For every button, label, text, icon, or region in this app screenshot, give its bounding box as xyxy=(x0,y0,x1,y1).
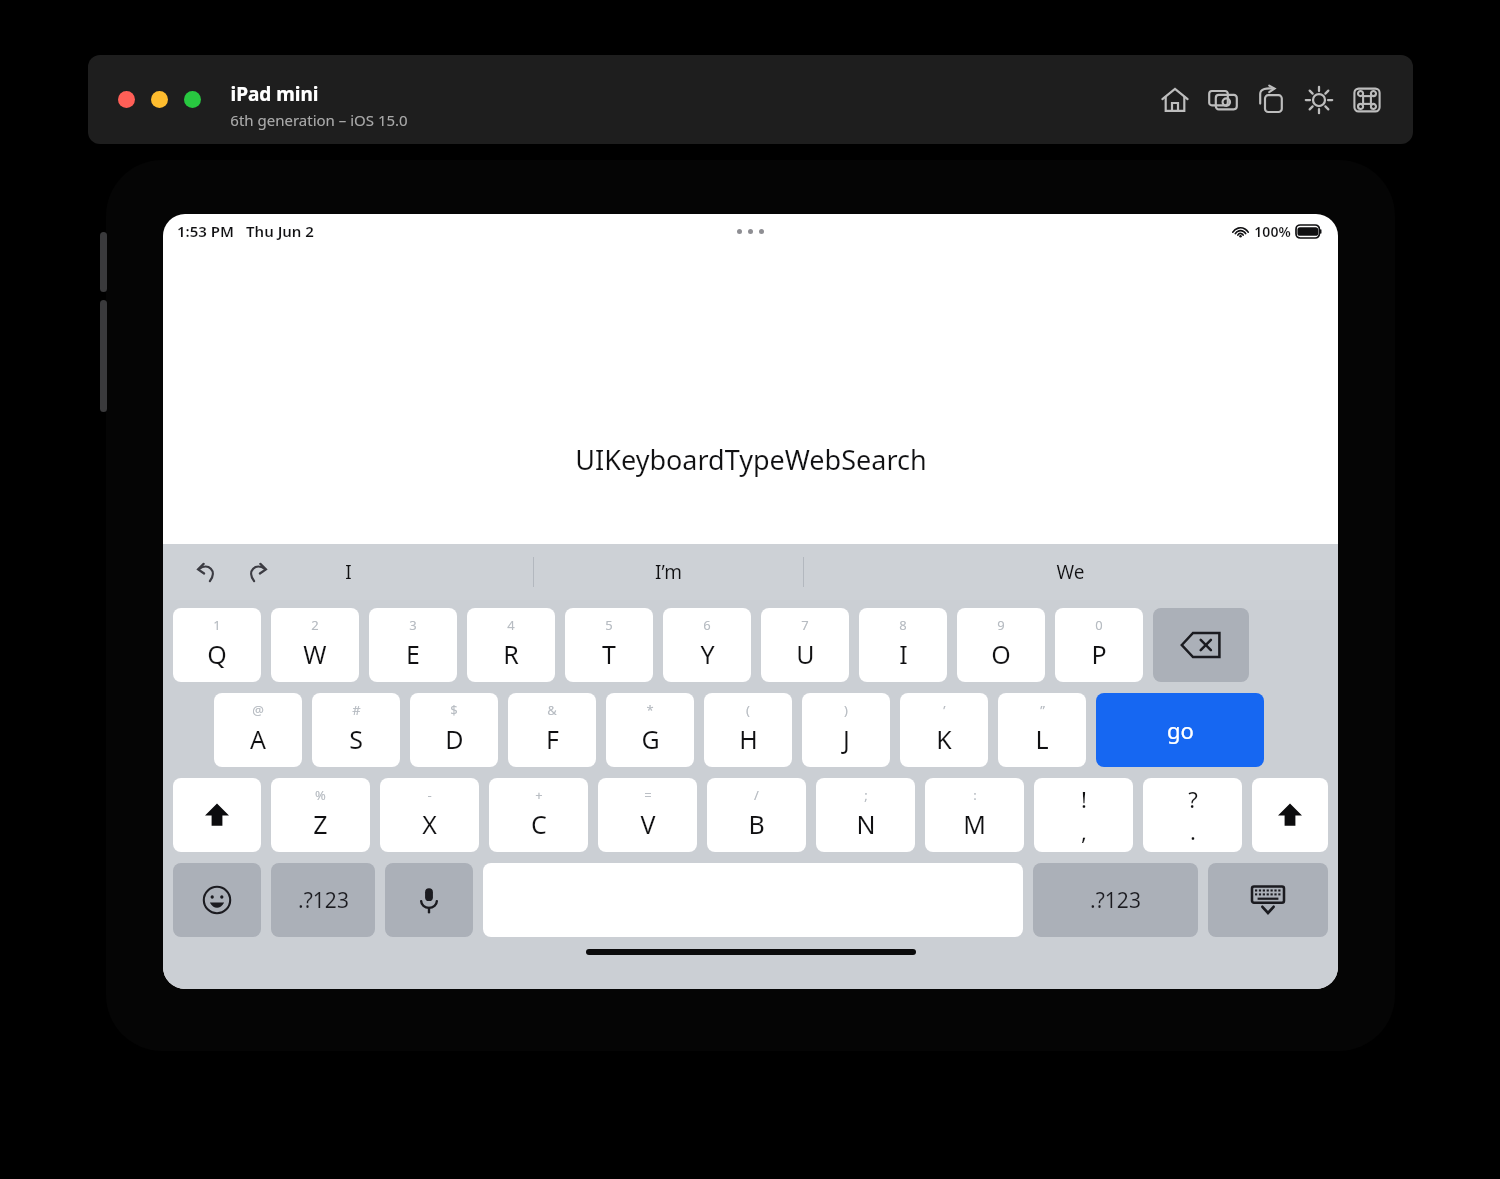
button[interactable]: Q xyxy=(173,608,261,682)
staticText: G xyxy=(641,722,660,756)
staticText: 6 xyxy=(703,616,711,634)
button[interactable]: .?123 xyxy=(271,863,375,937)
button[interactable]: Minimize xyxy=(151,91,168,108)
staticText: 5 xyxy=(605,616,613,634)
staticText: C xyxy=(531,807,547,841)
button[interactable]: Rotate xyxy=(1247,76,1295,124)
staticText: 1:53 PM xyxy=(177,221,234,241)
button[interactable]: ! , xyxy=(1034,778,1133,852)
button[interactable]: Close xyxy=(118,91,135,108)
staticText: , xyxy=(1081,816,1087,846)
staticText: ( xyxy=(746,701,750,719)
button[interactable]: Y xyxy=(663,608,751,682)
staticText: K xyxy=(936,722,952,756)
button[interactable]: U xyxy=(761,608,849,682)
button[interactable]: go xyxy=(1096,693,1264,767)
button[interactable]: F xyxy=(508,693,596,767)
staticText: I xyxy=(345,559,352,585)
staticText: U xyxy=(796,637,815,671)
button[interactable]: W xyxy=(271,608,359,682)
button[interactable]: E xyxy=(369,608,457,682)
staticText: ) xyxy=(844,701,848,719)
button[interactable]: K xyxy=(900,693,988,767)
staticText: W xyxy=(303,637,327,671)
button[interactable]: Screenshot xyxy=(1199,76,1247,124)
staticText: A xyxy=(250,722,266,756)
staticText: 4 xyxy=(507,616,515,634)
staticText: ; xyxy=(864,786,868,804)
staticText: & xyxy=(547,701,557,719)
staticText: M xyxy=(963,807,986,841)
button[interactable]: Undo xyxy=(185,550,229,594)
button[interactable]: Redo xyxy=(235,550,279,594)
button[interactable]: H xyxy=(704,693,792,767)
staticText: R xyxy=(503,637,519,671)
staticText: @ xyxy=(252,701,264,719)
button[interactable]: I’m xyxy=(533,544,803,600)
staticText: : xyxy=(973,786,977,804)
staticText: N xyxy=(856,807,876,841)
button[interactable]: I xyxy=(859,608,947,682)
staticText: ? xyxy=(1188,784,1198,814)
button[interactable]: Home xyxy=(1151,76,1199,124)
staticText: Q xyxy=(207,637,227,671)
button[interactable]: Shift xyxy=(1252,778,1328,852)
button[interactable]: Appearance xyxy=(1295,76,1343,124)
button[interactable]: Hide keyboard xyxy=(1208,863,1328,937)
button[interactable]: Dictation xyxy=(385,863,473,937)
button[interactable]: Z xyxy=(271,778,370,852)
button[interactable]: C xyxy=(489,778,588,852)
staticText: ’ xyxy=(943,701,946,719)
button[interactable]: V xyxy=(598,778,697,852)
staticText: . xyxy=(1190,816,1196,846)
staticText: V xyxy=(640,807,656,841)
staticText: S xyxy=(349,722,363,756)
button[interactable]: N xyxy=(816,778,915,852)
staticText: O xyxy=(991,637,1011,671)
button[interactable]: T xyxy=(565,608,653,682)
button[interactable]: G xyxy=(606,693,694,767)
button[interactable]: .?123 xyxy=(1033,863,1198,937)
staticText: L xyxy=(1035,722,1049,756)
button[interactable]: L xyxy=(998,693,1086,767)
staticText: 100% xyxy=(1254,222,1291,241)
button[interactable]: I xyxy=(163,544,533,600)
button[interactable]: Zoom xyxy=(184,91,201,108)
staticText: Y xyxy=(700,637,715,671)
staticText: = xyxy=(644,786,652,804)
button[interactable]: S xyxy=(312,693,400,767)
staticText: + xyxy=(535,786,543,804)
button[interactable]: J xyxy=(802,693,890,767)
button[interactable]: X xyxy=(380,778,479,852)
button[interactable]: R xyxy=(467,608,555,682)
staticText: % xyxy=(315,786,326,804)
staticText: Thu Jun 2 xyxy=(246,221,314,241)
button[interactable]: We xyxy=(803,544,1338,600)
staticText: E xyxy=(406,637,420,671)
staticText: We xyxy=(1056,559,1085,585)
button[interactable]: M xyxy=(925,778,1024,852)
button[interactable]: Delete xyxy=(1153,608,1249,682)
button[interactable]: P xyxy=(1055,608,1143,682)
button[interactable]: A xyxy=(214,693,302,767)
staticText: go xyxy=(1167,715,1194,745)
staticText: iPad mini xyxy=(230,81,319,107)
staticText: 8 xyxy=(899,616,907,634)
button[interactable]: ? . xyxy=(1143,778,1242,852)
staticText: .?123 xyxy=(1090,886,1141,915)
staticText: - xyxy=(427,786,432,804)
staticText: X xyxy=(422,807,437,841)
button[interactable]: Keyboard shortcuts xyxy=(1343,76,1391,124)
button[interactable]: O xyxy=(957,608,1045,682)
button[interactable]: Shift xyxy=(173,778,261,852)
staticText: I xyxy=(899,637,908,671)
button[interactable]: B xyxy=(707,778,806,852)
staticText: 6th generation – iOS 15.0 xyxy=(230,110,408,130)
staticText: 9 xyxy=(997,616,1005,634)
staticText: B xyxy=(748,807,765,841)
button[interactable]: Emoji xyxy=(173,863,261,937)
staticText: ” xyxy=(1040,701,1045,719)
staticText: T xyxy=(602,637,616,671)
button[interactable]: D xyxy=(410,693,498,767)
